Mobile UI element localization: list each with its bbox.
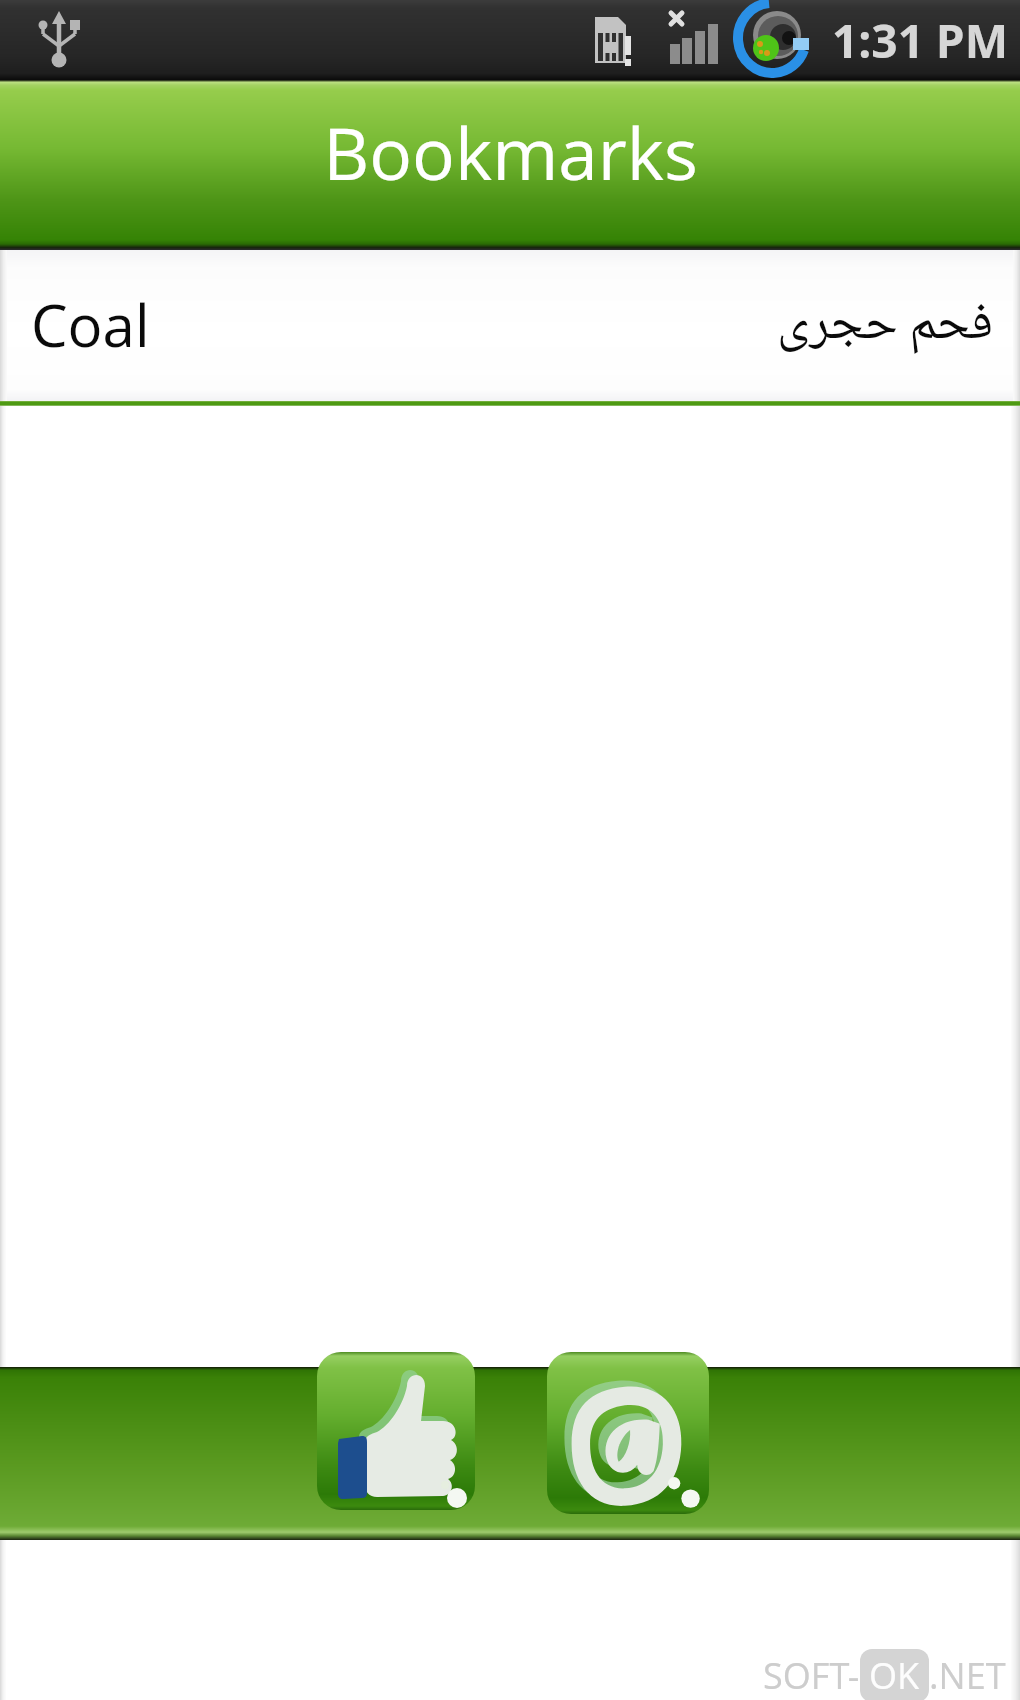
staticText: Bookmarks — [323, 104, 698, 201]
staticText: 1:31 PM — [832, 9, 1009, 72]
staticText: Coal — [31, 285, 150, 364]
button[interactable]: Coal — [0, 250, 1020, 406]
staticText: SOFT- — [763, 1651, 860, 1700]
staticText: فحم حجرى — [777, 282, 994, 371]
button[interactable]: Email — [547, 1352, 709, 1514]
staticText: .NET — [929, 1651, 1006, 1700]
button[interactable]: Like on Facebook — [317, 1352, 475, 1510]
staticText: OK — [869, 1651, 920, 1700]
